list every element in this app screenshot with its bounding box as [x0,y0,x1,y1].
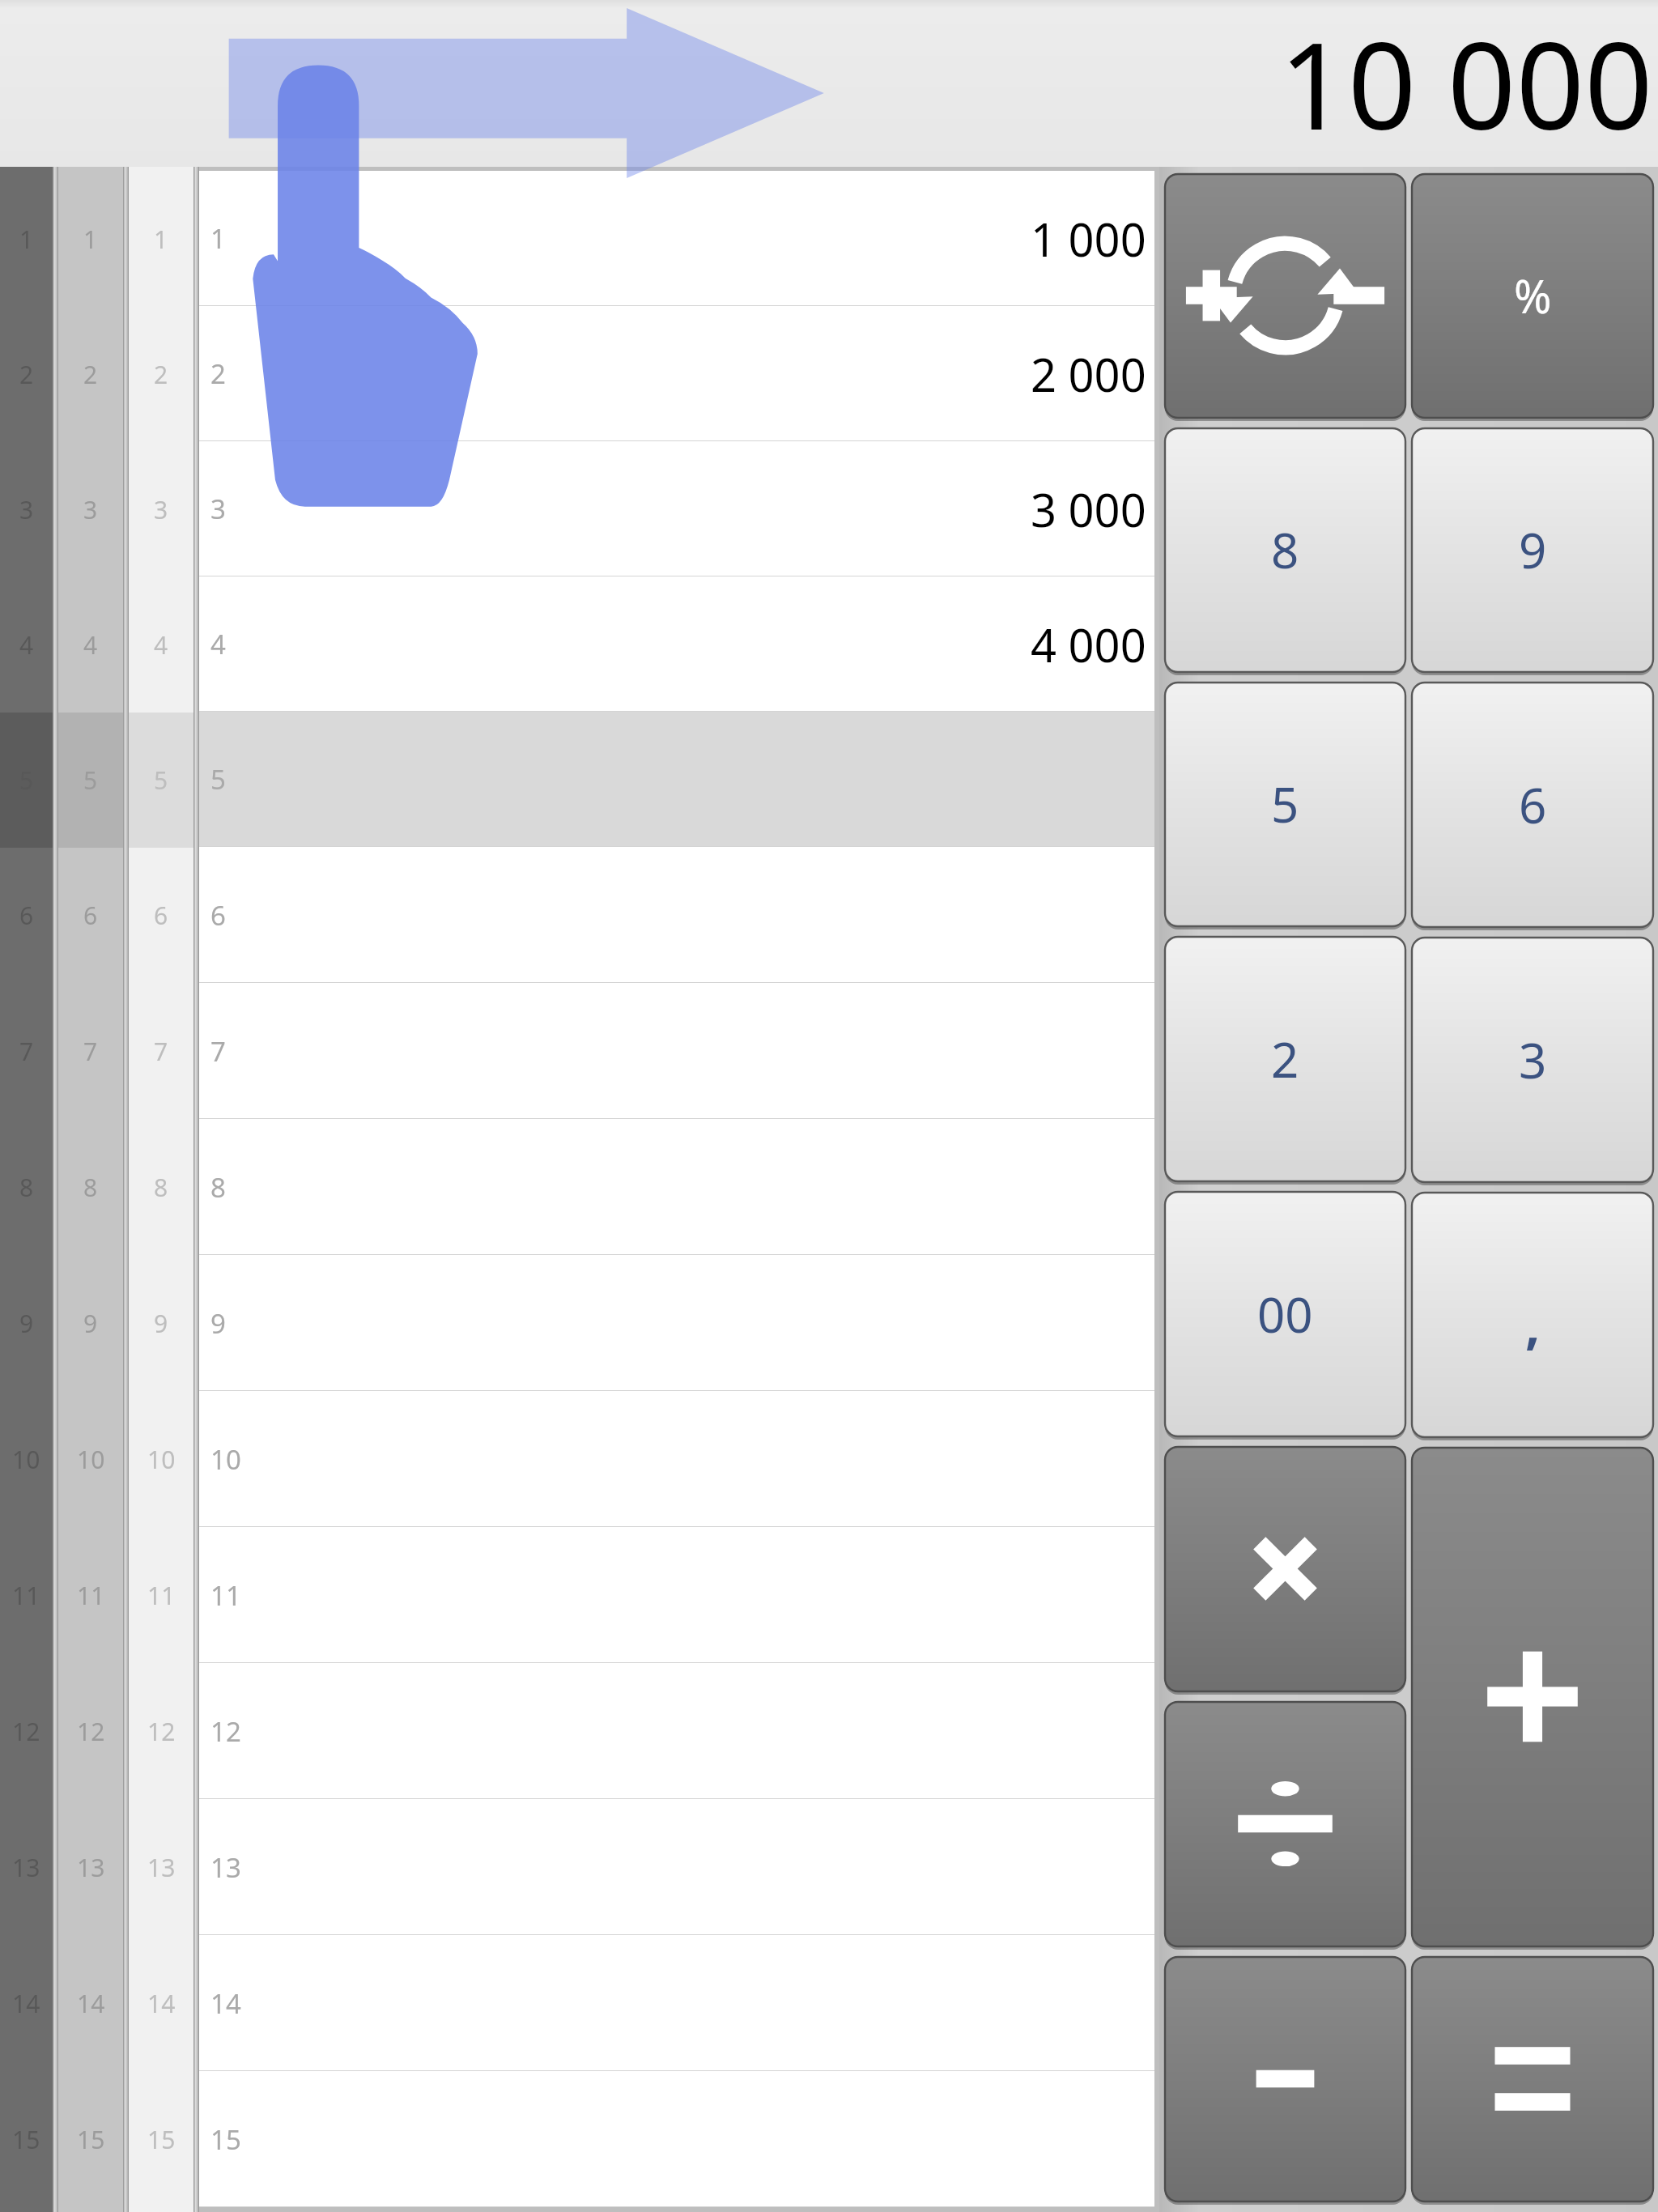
button[interactable]: 10 [129,1391,193,1527]
button[interactable]: 11 [58,1527,123,1663]
button[interactable]: 7 [199,983,1154,1119]
staticText: 13 [210,1849,241,1886]
button[interactable]: 7 [58,983,123,1119]
button[interactable]: 15 [199,2071,1154,2207]
button[interactable]: 2 [1164,936,1406,1185]
button[interactable]: 9 [199,1255,1154,1391]
staticText: 10 000 [1279,2,1653,165]
button[interactable]: Toggle sign [1164,173,1406,421]
button[interactable]: Multiply [1164,1446,1406,1695]
button[interactable]: 3 [1411,937,1654,1185]
button[interactable]: 11 [129,1527,193,1663]
button[interactable]: 12 [199,1663,1154,1799]
staticText: 9 [154,1307,168,1340]
button[interactable]: 8 [1164,428,1406,675]
button[interactable]: 13 [129,1799,193,1935]
staticText: 15 [12,2123,40,2156]
button[interactable]: 3 [129,442,193,577]
staticText: 4 000 [1031,614,1146,675]
button[interactable]: 9 [58,1255,123,1391]
button[interactable]: 14 [129,1935,193,2071]
button[interactable]: 5 [58,713,123,848]
button[interactable]: 15 [129,2071,193,2207]
button[interactable]: 4 [58,577,123,713]
button[interactable]: 10 [199,1391,1154,1527]
staticText: 8 [83,1171,98,1204]
staticText: 7 [210,1033,226,1070]
staticText: 4 [83,628,98,661]
button[interactable]: 9 [1411,428,1654,675]
button[interactable]: 9 [129,1255,193,1391]
button[interactable]: 2 [199,306,1154,441]
staticText: 1 000 [1031,208,1146,270]
button[interactable]: 10 [58,1391,123,1527]
button[interactable]: 6 [1411,682,1654,930]
button[interactable]: , [1411,1192,1654,1440]
staticText: 10 [210,1441,241,1478]
button[interactable]: 3 [58,442,123,577]
button[interactable]: Subtract [1164,1956,1406,2205]
staticText: 5 [154,764,168,797]
staticText: 7 [19,1035,34,1068]
button[interactable]: 6 [199,847,1154,983]
staticText: 9 [1519,517,1547,583]
button[interactable]: 5 [1164,682,1406,929]
button[interactable]: 12 [58,1663,123,1799]
staticText: 3 [154,493,168,526]
button[interactable]: 14 [58,1935,123,2071]
staticText: 2 [19,358,34,391]
button[interactable]: 00 [1164,1191,1406,1440]
button[interactable]: 1 [58,172,123,307]
button[interactable]: 12 [129,1663,193,1799]
staticText: 6 [1519,772,1547,838]
staticText: 7 [83,1035,98,1068]
staticText: 14 [147,1987,176,2020]
button[interactable]: Divide [1164,1701,1406,1950]
staticText: 15 [210,2121,241,2158]
staticText: 8 [19,1171,34,1204]
staticText: 1 [19,223,34,256]
staticText: 14 [77,1987,105,2020]
button[interactable]: 3 [199,441,1154,576]
staticText: , [1525,1289,1541,1359]
button[interactable]: 2 [58,307,123,442]
button[interactable]: 1 [129,172,193,307]
button[interactable]: 15 [58,2071,123,2207]
button[interactable]: 4 [129,577,193,713]
button[interactable]: % [1411,173,1654,421]
button[interactable]: 2 [129,307,193,442]
staticText: 8 [210,1169,226,1206]
button[interactable]: 8 [199,1119,1154,1255]
button[interactable]: Add [1411,1447,1654,1950]
button[interactable]: 11 [199,1527,1154,1663]
button[interactable]: 14 [199,1935,1154,2071]
button[interactable]: 6 [58,848,123,983]
button[interactable]: 7 [129,983,193,1119]
button[interactable]: 13 [58,1799,123,1935]
staticText: 4 [19,628,34,661]
button[interactable]: Equals [1411,1956,1654,2205]
button[interactable]: 1 [199,171,1154,306]
button[interactable]: 6 [129,848,193,983]
button[interactable]: 8 [58,1119,123,1255]
button[interactable]: 4 [199,576,1154,712]
button[interactable]: 8 [129,1119,193,1255]
button[interactable]: 13 [199,1799,1154,1935]
